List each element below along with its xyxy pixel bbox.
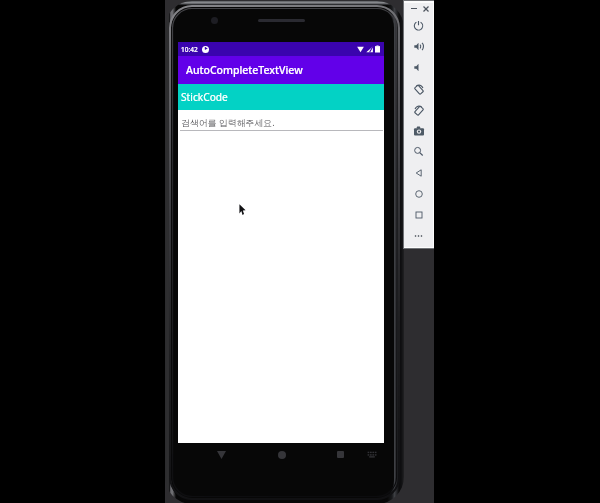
- button[interactable]: Overview: [407, 204, 430, 224]
- staticText: 10:42: [181, 45, 198, 54]
- button[interactable]: Minimize: [407, 2, 420, 15]
- button[interactable]: Close: [419, 2, 432, 15]
- button[interactable]: Volume up: [407, 36, 430, 56]
- button[interactable]: Home: [273, 446, 290, 463]
- button[interactable]: Volume down: [407, 57, 430, 77]
- button[interactable]: Keyboard: [363, 446, 380, 463]
- button[interactable]: Power: [407, 15, 430, 35]
- staticText: 검색어를 입력해주세요.: [181, 116, 275, 128]
- button[interactable]: More: [407, 225, 430, 245]
- button[interactable]: Recent apps: [332, 446, 349, 463]
- staticText: StickCode: [181, 90, 228, 104]
- button[interactable]: Take screenshot: [407, 120, 430, 140]
- button[interactable]: Home: [407, 183, 430, 203]
- button[interactable]: 검색어를 입력해주세요.: [178, 110, 384, 130]
- button[interactable]: Rotate right: [407, 99, 430, 119]
- button[interactable]: Back: [407, 162, 430, 182]
- button[interactable]: Back: [213, 446, 230, 463]
- button[interactable]: Rotate left: [407, 78, 430, 98]
- button[interactable]: Zoom: [407, 141, 430, 161]
- staticText: AutoCompleteTextView: [186, 63, 303, 77]
